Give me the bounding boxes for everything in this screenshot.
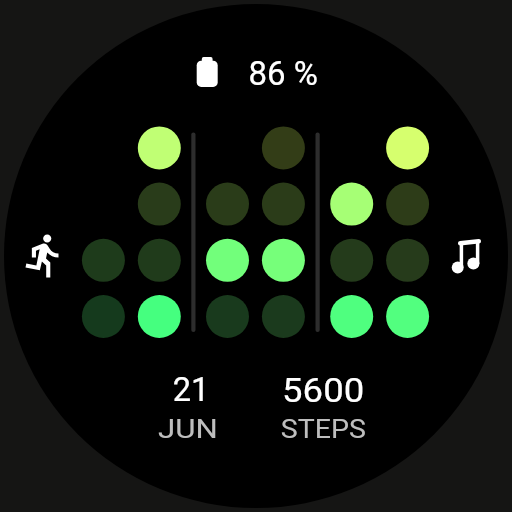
button[interactable]: Battery 86 percent xyxy=(190,50,322,92)
button[interactable]: 5600 steps xyxy=(278,368,372,444)
button[interactable]: Music xyxy=(442,228,494,284)
button[interactable]: Date 21 June xyxy=(150,368,228,444)
button[interactable]: Binary clock watch face xyxy=(0,0,512,512)
button[interactable]: Fitness xyxy=(18,228,70,284)
